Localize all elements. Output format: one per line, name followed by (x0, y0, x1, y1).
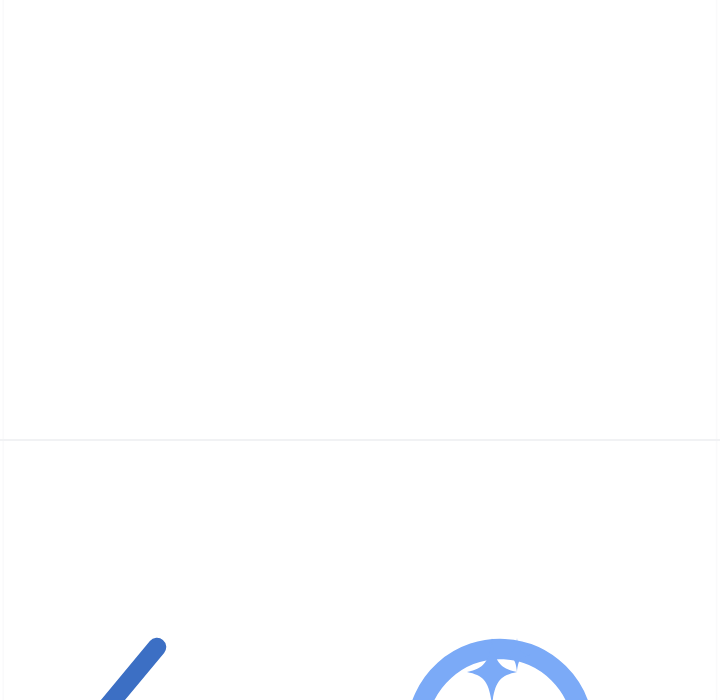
button[interactable]: Done (30, 616, 210, 700)
button[interactable]: Auto enhance (395, 626, 610, 700)
